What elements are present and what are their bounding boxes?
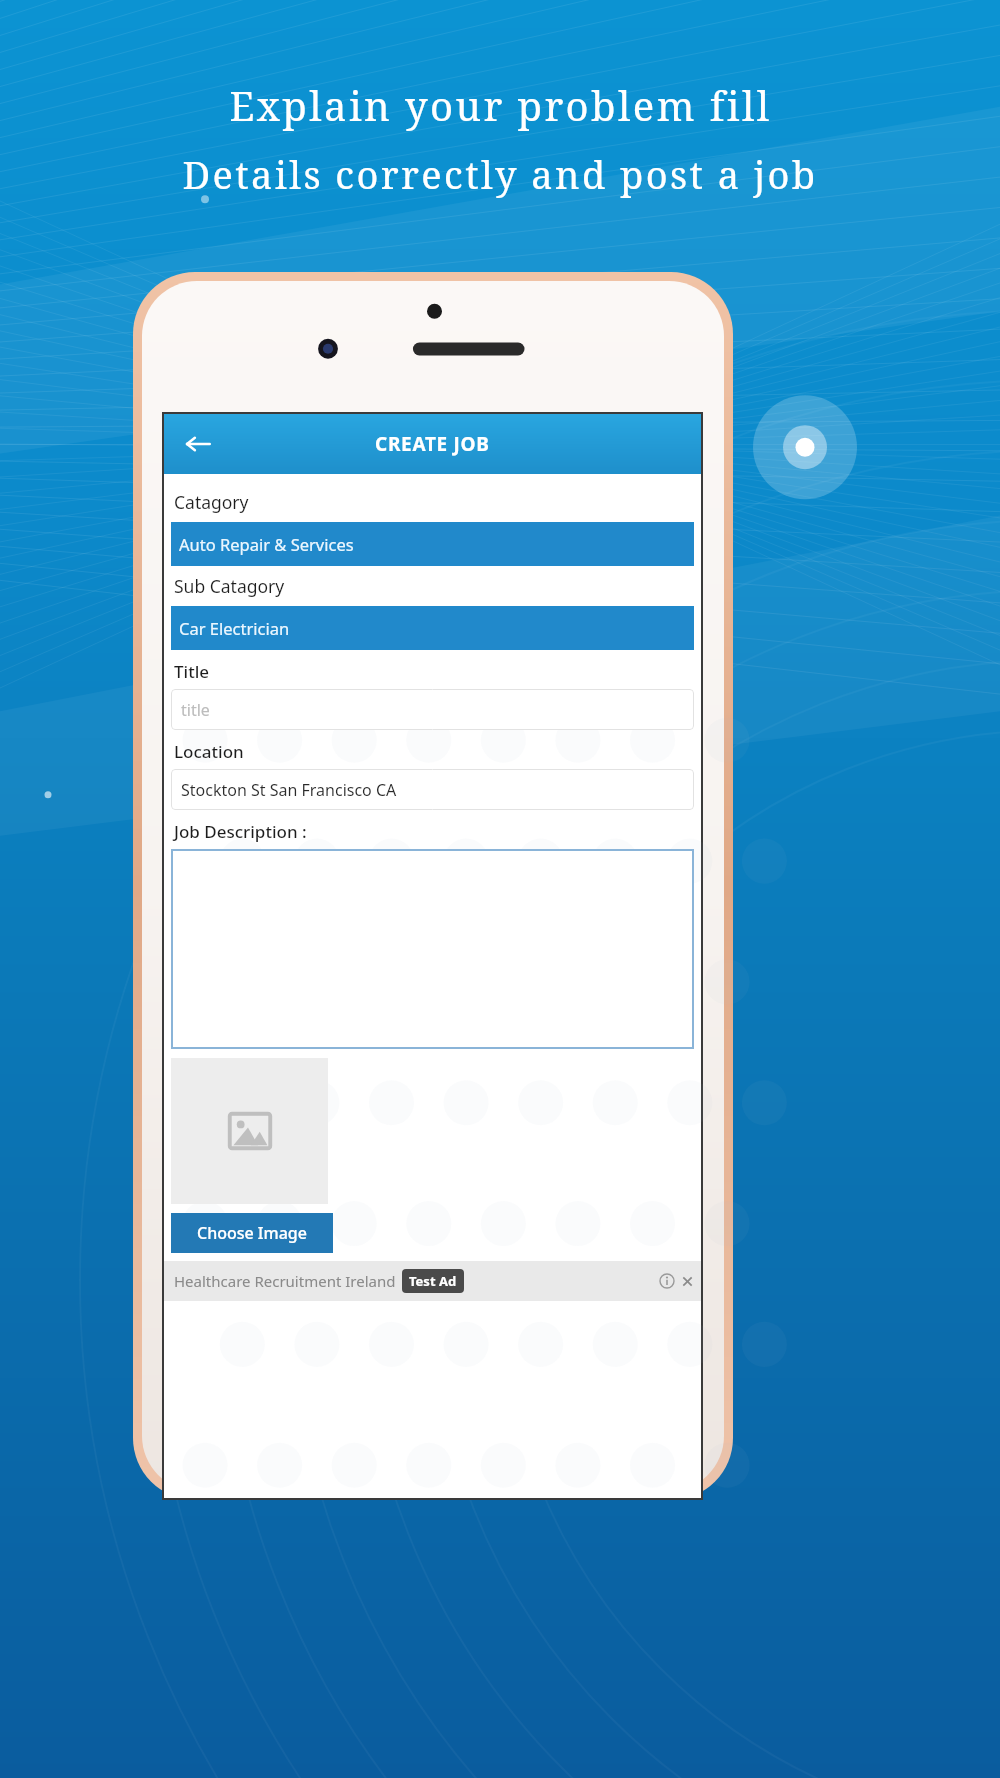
staticText: Title — [174, 660, 210, 683]
staticText: Stockton St San Francisco CA — [181, 779, 397, 801]
button[interactable]: Job Description : — [174, 820, 701, 843]
button[interactable]: Ad info — [659, 1273, 675, 1289]
staticText: Sub Catagory — [174, 574, 285, 598]
staticText: Healthcare Recruitment Ireland — [174, 1271, 396, 1291]
staticText: Auto Repair & Services — [179, 533, 354, 555]
staticText: Test Ad — [409, 1272, 457, 1290]
button[interactable]: Healthcare Recruitment Ireland — [164, 1261, 701, 1301]
button[interactable]: Selected image preview — [171, 1058, 328, 1204]
staticText: Catagory — [174, 490, 249, 514]
button[interactable]: Auto Repair & Services — [171, 522, 694, 566]
staticText: Explain your problem fill — [229, 78, 772, 132]
staticText: Job Description : — [174, 820, 307, 843]
button[interactable]: title — [171, 689, 694, 730]
staticText: CREATE JOB — [375, 431, 490, 457]
button[interactable]: Catagory — [174, 490, 701, 514]
staticText: title — [181, 699, 210, 721]
button[interactable]: Sub Catagory — [174, 574, 701, 598]
staticText: Choose Image — [197, 1222, 307, 1244]
button[interactable]: Title — [174, 660, 701, 683]
button[interactable]: Stockton St San Francisco CA — [171, 769, 694, 810]
button[interactable] — [171, 849, 694, 1049]
button[interactable]: Location — [174, 740, 701, 763]
button[interactable]: Back — [176, 422, 220, 466]
staticText: Details correctly and post a job — [182, 148, 818, 200]
button[interactable]: Car Electrician — [171, 606, 694, 650]
button[interactable]: Choose Image — [171, 1213, 333, 1253]
staticText: Location — [174, 740, 244, 763]
staticText: Car Electrician — [179, 617, 290, 639]
button[interactable]: Close ad — [680, 1274, 695, 1289]
